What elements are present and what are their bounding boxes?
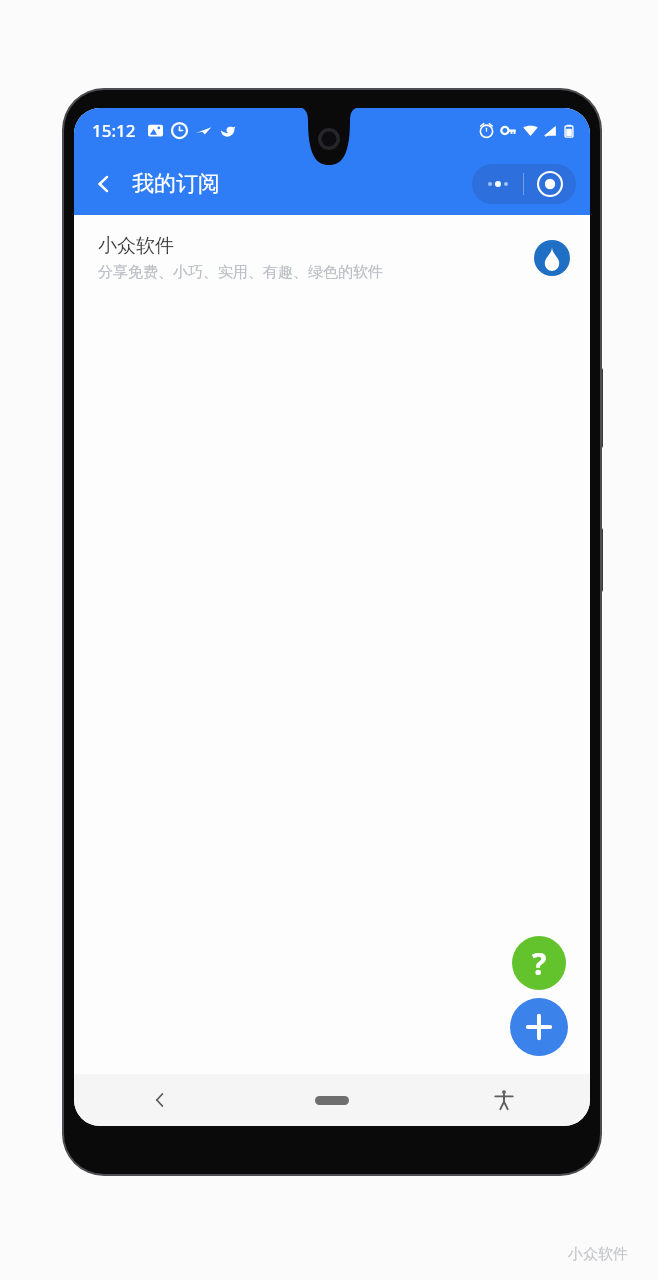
button[interactable]: Help: [512, 936, 566, 990]
button[interactable]: Back: [74, 1074, 246, 1126]
button[interactable]: Home: [246, 1074, 418, 1126]
button[interactable]: Record: [524, 164, 576, 204]
button[interactable]: Back: [82, 162, 126, 206]
button[interactable]: Add subscription: [510, 998, 568, 1056]
staticText: 我的订阅: [132, 170, 220, 198]
button[interactable]: Accessibility: [418, 1074, 590, 1126]
staticText: 分享免费、小巧、实用、有趣、绿色的软件: [98, 263, 383, 282]
staticText: 15:12: [92, 119, 136, 142]
button[interactable]: More options: [472, 164, 523, 204]
staticText: 小众软件: [568, 1245, 628, 1264]
button[interactable]: 小众软件: [74, 215, 590, 301]
staticText: ?: [532, 943, 547, 984]
staticText: 小众软件: [98, 234, 174, 258]
